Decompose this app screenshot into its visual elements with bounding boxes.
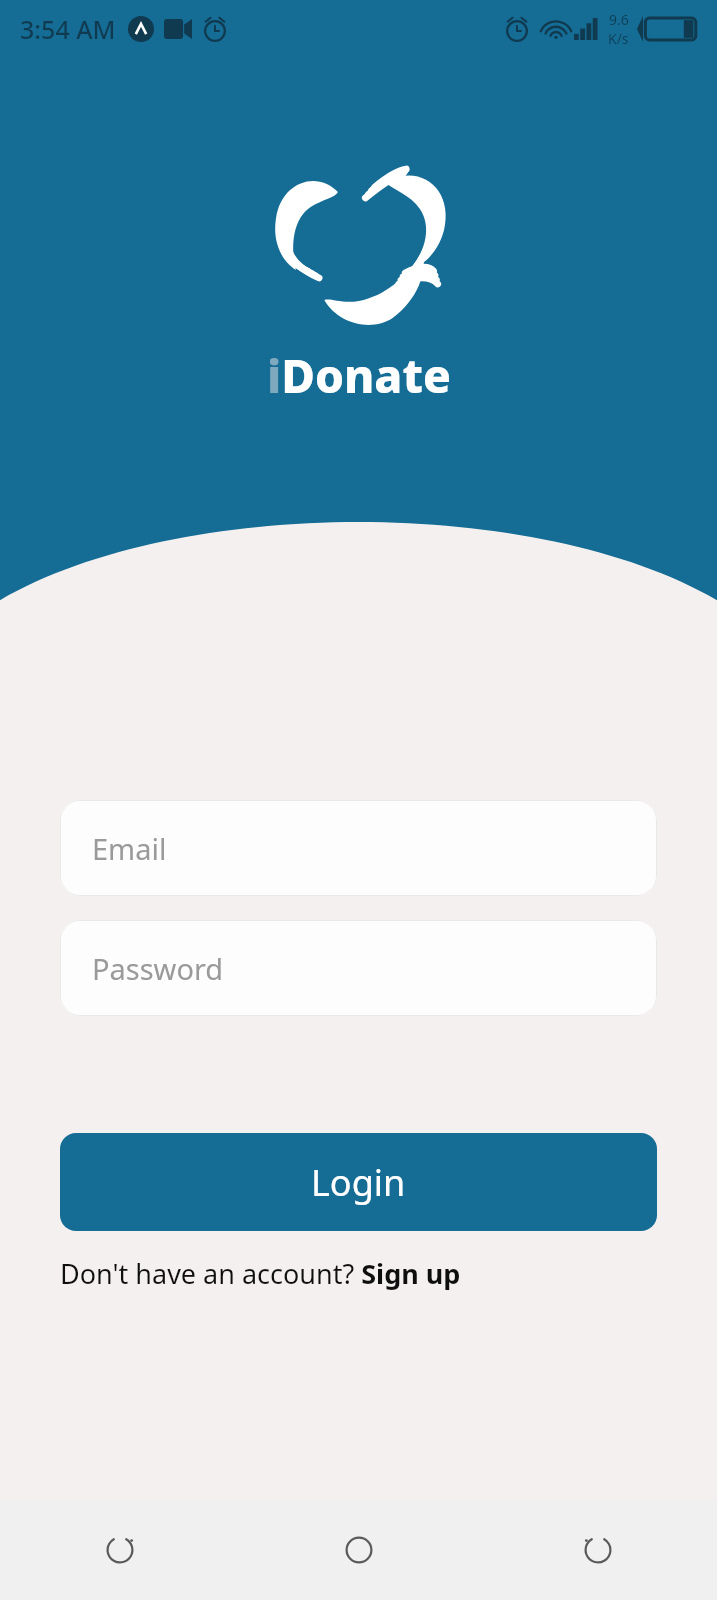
button[interactable]: Login	[60, 1133, 657, 1231]
staticText: Login	[311, 1158, 406, 1207]
staticText: iDonate	[267, 344, 451, 407]
staticText: K/s	[608, 29, 629, 48]
staticText: 3:54 AM	[20, 12, 116, 46]
button[interactable]: Email	[60, 800, 657, 896]
button[interactable]: Recent apps	[0, 1500, 239, 1600]
staticText: Email	[92, 829, 167, 868]
staticText: Don't have an account? Sign up	[60, 1255, 461, 1292]
button[interactable]: Back	[478, 1500, 717, 1600]
staticText: 9.6	[609, 10, 629, 29]
button[interactable]: Home	[239, 1500, 478, 1600]
button[interactable]: Password	[60, 920, 657, 1016]
staticText: Password	[92, 949, 224, 988]
button[interactable]: Don't have an account? Sign up	[60, 1255, 657, 1292]
